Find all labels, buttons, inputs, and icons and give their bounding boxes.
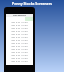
button[interactable]: ABC 0.42 +12.5% (6, 33, 33, 36)
button[interactable]: ABC 0.42 +12.5% (6, 57, 33, 60)
staticText: ABC 0.42 +12.5% (6, 27, 33, 30)
button[interactable]: ABC 0.42 +12.5% (6, 48, 33, 51)
staticText: ABC 0.42 +12.5% (6, 42, 33, 45)
staticText: ABC 0.42 +12.5% (6, 30, 33, 33)
staticText: ABC 0.42 +12.5% (6, 57, 33, 60)
button[interactable]: ABC 0.42 +12.5% (6, 45, 33, 48)
button[interactable]: ABC 0.42 +12.5% (6, 54, 33, 57)
button[interactable]: ABC 0.42 +12.5% (6, 27, 33, 30)
staticText: Top Gainers (13, 14, 26, 17)
staticText: ABC 0.42 +12.5% (6, 48, 33, 51)
staticText: ABC 0.42 +12.5% (6, 54, 33, 57)
staticText: Penny Stocks Screeners (0, 1, 64, 6)
staticText: ABC 0.42 +12.5% (6, 33, 33, 36)
button[interactable]: ABC 0.42 +12.5% (6, 39, 33, 42)
staticText: ABC 0.42 +12.5% (6, 39, 33, 42)
button[interactable]: ABC 0.42 +12.5% (6, 42, 33, 45)
button[interactable]: ABC 0.42 +12.5% (6, 60, 33, 63)
button[interactable]: ABC 0.42 +12.5% (6, 30, 33, 33)
staticText: ABC 0.42 +12.5% (6, 36, 33, 39)
button[interactable]: ABC 0.42 +12.5% (6, 51, 33, 54)
button[interactable]: ABC 0.42 +12.5% (6, 21, 33, 24)
staticText: ABC 0.42 +12.5% (6, 21, 33, 24)
staticText: ABC 0.42 +12.5% (6, 51, 33, 54)
staticText: ABC 0.42 +12.5% (6, 60, 33, 63)
button[interactable]: ABC 0.42 +12.5% (6, 36, 33, 39)
staticText: ABC 0.42 +12.5% (6, 24, 33, 27)
button[interactable]: ABC 0.42 +12.5% (6, 24, 33, 27)
staticText: ABC 0.42 +12.5% (6, 45, 33, 48)
